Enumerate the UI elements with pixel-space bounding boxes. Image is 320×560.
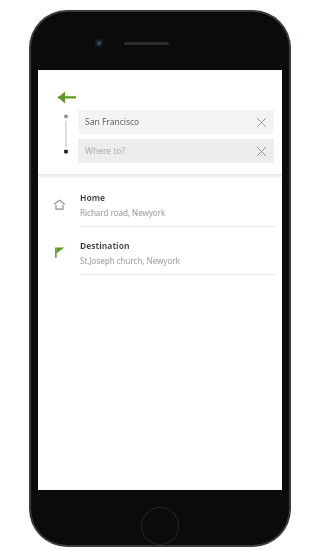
staticText: Destination [80, 240, 130, 252]
button[interactable]: Home [38, 183, 282, 225]
button[interactable]: Destination [38, 231, 282, 273]
staticText: Richard road, Newyork [80, 207, 166, 218]
staticText: Home [80, 192, 106, 204]
button[interactable]: Back [52, 82, 82, 112]
button[interactable]: Clear [252, 142, 270, 160]
button[interactable]: San Francisco [78, 110, 274, 134]
button[interactable]: Clear [252, 113, 270, 131]
staticText: Where to? [85, 145, 126, 157]
button[interactable]: Where to? [78, 139, 274, 163]
staticText: St.Joseph church, Newyork [80, 255, 180, 266]
staticText: San Francisco [85, 116, 140, 128]
